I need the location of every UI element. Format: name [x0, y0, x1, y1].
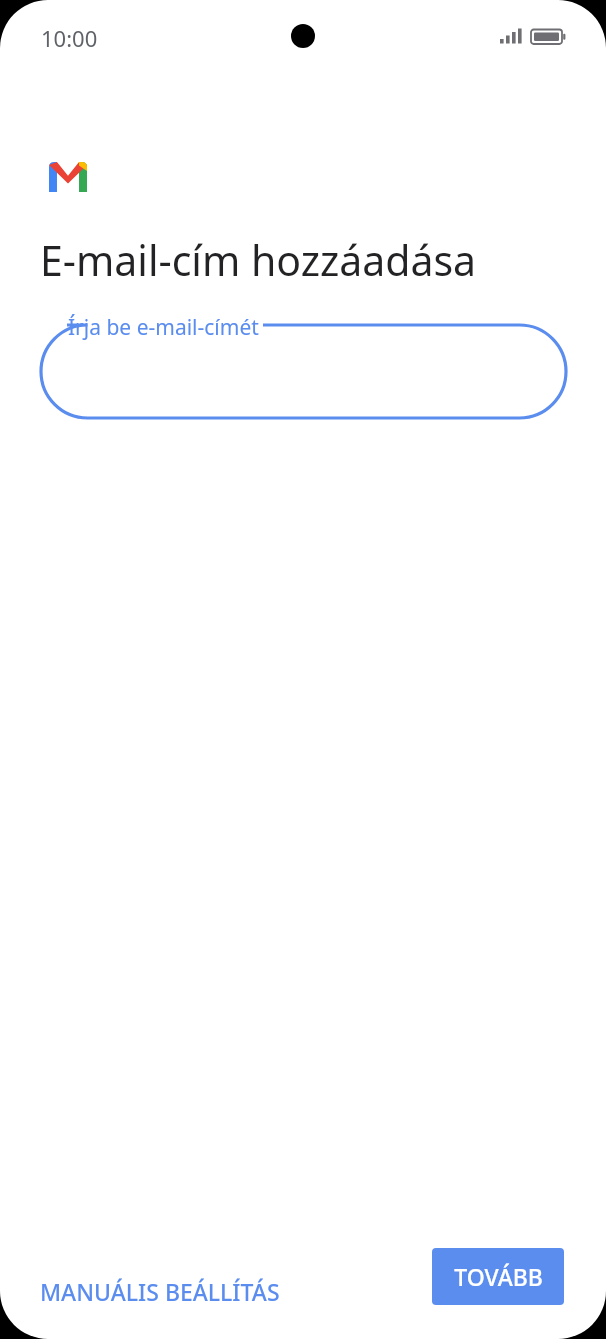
button[interactable]: Írja be e-mail-címét: [41, 309, 566, 434]
staticText: TOVÁBB: [454, 1261, 543, 1292]
staticText: 10:00: [41, 23, 98, 53]
staticText: E-mail-cím hozzáadása: [40, 232, 477, 288]
button[interactable]: TOVÁBB: [432, 1248, 564, 1305]
button[interactable]: MANUÁLIS BEÁLLÍTÁS: [24, 1262, 296, 1321]
staticText: MANUÁLIS BEÁLLÍTÁS: [40, 1276, 280, 1307]
staticText: Írja be e-mail-címét: [68, 313, 259, 342]
